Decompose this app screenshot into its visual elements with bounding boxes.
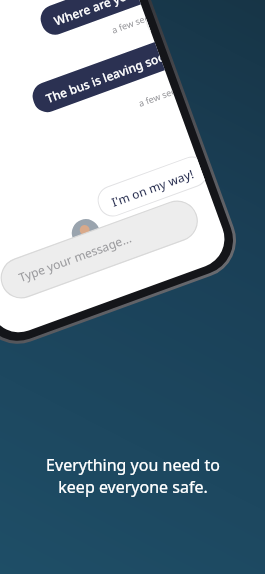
button[interactable]: Everything you need to bbox=[0, 454, 265, 498]
staticText: Everything you need to bbox=[46, 454, 220, 476]
staticText: keep everyone safe. bbox=[58, 476, 208, 498]
